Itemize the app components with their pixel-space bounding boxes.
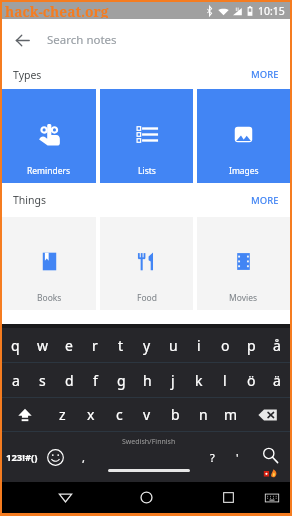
staticText: Food [137, 292, 157, 304]
button[interactable]: j [160, 363, 186, 397]
staticText: å [273, 336, 281, 355]
staticText: p [247, 336, 256, 355]
staticText: MORE [251, 68, 279, 81]
staticText: d [65, 371, 74, 390]
staticText: v [143, 405, 151, 424]
button[interactable]: ? [200, 432, 224, 482]
staticText: f [93, 371, 98, 390]
button[interactable]: l [212, 363, 238, 397]
button[interactable]: Reminders [2, 89, 96, 183]
staticText: Lists [138, 165, 156, 177]
button[interactable]: a [2, 363, 29, 397]
staticText: ö [247, 371, 256, 390]
staticText: q [11, 336, 20, 355]
button[interactable]: Food [100, 217, 193, 310]
staticText: g [117, 371, 126, 390]
staticText: Reminders [27, 165, 71, 177]
staticText: b [171, 405, 180, 424]
button[interactable]: Delete [245, 398, 290, 431]
button[interactable]: b [161, 398, 189, 431]
staticText: 10:15 [258, 4, 285, 18]
button[interactable]: t [108, 328, 134, 362]
button[interactable]: Recents [210, 482, 246, 513]
staticText: y [143, 336, 151, 355]
staticText: x [87, 405, 95, 424]
staticText: w [37, 336, 49, 355]
button[interactable]: , [69, 432, 98, 482]
button[interactable]: Emoji [41, 432, 69, 482]
staticText: n [199, 405, 208, 424]
staticText: z [59, 405, 66, 424]
button[interactable]: z [48, 398, 77, 431]
staticText: r [92, 336, 98, 355]
button[interactable]: Books [2, 217, 96, 310]
staticText: t [118, 336, 124, 355]
staticText: ? [210, 450, 215, 465]
staticText: Movies [229, 292, 258, 304]
button[interactable]: w [29, 328, 56, 362]
button[interactable]: Home [128, 482, 164, 513]
staticText: e [65, 336, 73, 355]
button[interactable]: Movies [197, 217, 290, 310]
button[interactable]: Shift [2, 398, 48, 431]
staticText: k [195, 371, 203, 390]
button[interactable]: Images [197, 89, 290, 183]
button[interactable]: x [77, 398, 105, 431]
button[interactable]: i [186, 328, 212, 362]
button[interactable]: c [105, 398, 133, 431]
staticText: s [39, 371, 46, 390]
staticText: c [116, 405, 123, 424]
button[interactable]: s [29, 363, 56, 397]
button[interactable]: MORE [240, 189, 290, 212]
staticText: l [223, 371, 227, 390]
button[interactable]: e [56, 328, 82, 362]
staticText: j [171, 371, 175, 390]
button[interactable]: r [82, 328, 108, 362]
button[interactable]: u [160, 328, 186, 362]
staticText: Things [13, 193, 47, 207]
staticText: MORE [251, 194, 279, 207]
button[interactable]: 123!#() [2, 432, 41, 482]
button[interactable]: k [186, 363, 212, 397]
staticText: a [12, 371, 20, 390]
staticText: u [169, 336, 178, 355]
staticText: Images [229, 165, 259, 177]
button[interactable]: m [217, 398, 245, 431]
button[interactable]: Search [251, 432, 290, 482]
button[interactable]: o [212, 328, 238, 362]
button[interactable]: h [134, 363, 160, 397]
staticText: , [82, 450, 85, 465]
staticText: hack-cheat.org [5, 2, 109, 18]
staticText: 123!#() [6, 451, 38, 464]
button[interactable]: q [2, 328, 29, 362]
button[interactable]: p [238, 328, 264, 362]
button[interactable]: Lists [100, 89, 193, 183]
button[interactable]: n [189, 398, 217, 431]
button[interactable]: ä [264, 363, 290, 397]
button[interactable]: g [108, 363, 134, 397]
staticText: m [224, 405, 238, 424]
staticText: Types [13, 68, 42, 82]
staticText: i [197, 336, 201, 355]
staticText: ä [273, 371, 281, 390]
staticText: Books [37, 292, 62, 304]
button[interactable]: MORE [240, 63, 290, 86]
staticText: h [143, 371, 152, 390]
button[interactable]: Back [2, 20, 42, 60]
button[interactable]: Swedish/Finnish [98, 432, 200, 482]
staticText: o [221, 336, 230, 355]
button[interactable]: y [134, 328, 160, 362]
staticText: Search notes [47, 32, 117, 48]
button[interactable]: v [133, 398, 161, 431]
staticText: ' [236, 450, 239, 465]
button[interactable]: f [82, 363, 108, 397]
staticText: Swedish/Finnish [122, 437, 176, 447]
button[interactable]: ' [224, 432, 251, 482]
button[interactable]: Switch keyboard [260, 482, 284, 513]
button[interactable]: ö [238, 363, 264, 397]
button[interactable]: d [56, 363, 82, 397]
button[interactable]: å [264, 328, 290, 362]
button[interactable]: Back [47, 482, 83, 513]
